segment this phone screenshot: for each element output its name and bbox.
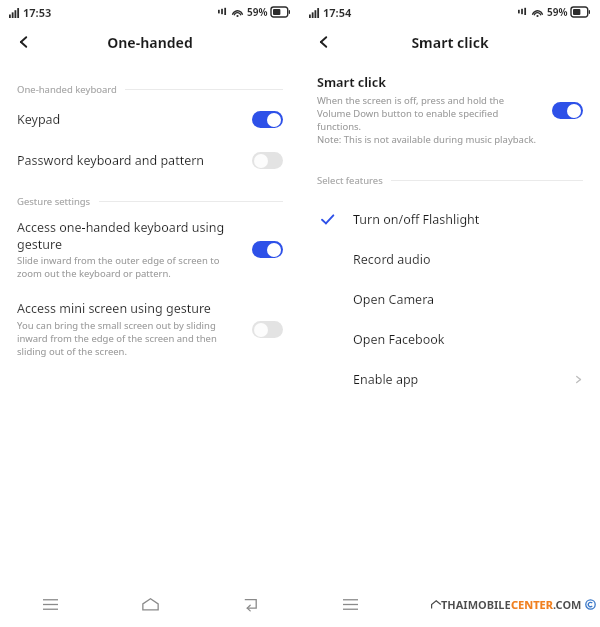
button[interactable]: Open Camera	[300, 279, 600, 319]
staticText: Enable app	[353, 371, 419, 388]
staticText: 17:53	[23, 5, 52, 20]
button[interactable]: Access mini screen using gesture	[0, 292, 300, 366]
staticText: .COM	[553, 597, 582, 612]
button[interactable]: Back	[8, 26, 40, 58]
staticText: Keypad	[17, 111, 61, 128]
button[interactable]: Open Facebook	[300, 319, 600, 359]
staticText: Access mini screen using gesture	[17, 300, 211, 317]
staticText: Smart click	[411, 33, 489, 52]
staticText: THAIMOBILE	[441, 597, 511, 612]
button[interactable]: On	[552, 102, 583, 119]
staticText: One-handed	[107, 33, 193, 52]
staticText: 59%	[247, 5, 268, 19]
staticText: Record audio	[353, 251, 431, 268]
staticText: Password keyboard and pattern	[17, 152, 205, 169]
staticText: Access one-handed keyboard using gesture	[17, 219, 238, 252]
button[interactable]: Back	[200, 581, 300, 627]
staticText: 17:54	[323, 5, 352, 20]
button[interactable]: Password keyboard and pattern	[0, 139, 300, 181]
button[interactable]: Record audio	[300, 239, 600, 279]
staticText: One-handed keyboard	[17, 83, 117, 96]
button[interactable]: Home	[100, 581, 200, 627]
staticText: Select features	[317, 174, 383, 187]
staticText: You can bring the small screen out by sl…	[17, 319, 238, 358]
button[interactable]: Off	[252, 321, 283, 338]
button[interactable]: Recents	[300, 581, 400, 627]
staticText: Open Camera	[353, 291, 435, 308]
button[interactable]: Access one-handed keyboard using gesture	[0, 211, 300, 288]
staticText: Turn on/off Flashlight	[353, 211, 480, 228]
button[interactable]: On	[252, 111, 283, 128]
button[interactable]: Back	[308, 26, 340, 58]
staticText: When the screen is off, press and hold t…	[317, 94, 538, 146]
button[interactable]: Keypad	[0, 99, 300, 139]
staticText: CENTER	[511, 597, 553, 612]
button[interactable]: Enable app	[300, 359, 600, 399]
button[interactable]: Off	[252, 152, 283, 169]
button[interactable]: Turn on/off Flashlight	[300, 199, 600, 239]
button[interactable]: Smart click	[300, 74, 600, 146]
staticText: Slide inward from the outer edge of scre…	[17, 254, 238, 280]
button[interactable]: Recents	[0, 581, 100, 627]
staticText: Open Facebook	[353, 331, 445, 348]
button[interactable]: On	[252, 241, 283, 258]
staticText: 59%	[547, 5, 568, 19]
staticText: Gesture settings	[17, 195, 91, 208]
staticText: Smart click	[317, 74, 386, 91]
